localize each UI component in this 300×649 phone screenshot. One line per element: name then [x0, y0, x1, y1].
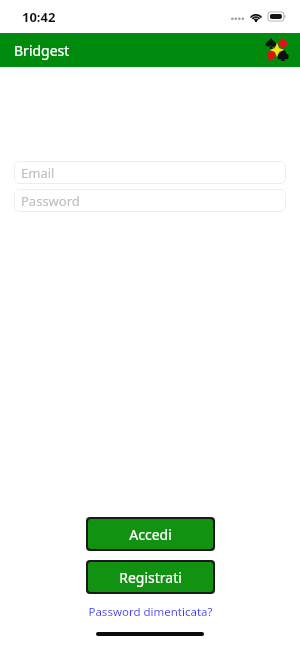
staticText: Password dimenticata? [88, 604, 213, 620]
button[interactable]: Registrati [88, 562, 213, 592]
button[interactable]: Bridgest logo [265, 38, 289, 62]
staticText: Registrati [119, 568, 182, 587]
button[interactable]: Email [14, 161, 286, 184]
button[interactable]: Password [14, 189, 286, 212]
staticText: Email [21, 164, 55, 182]
staticText: Password [21, 192, 80, 210]
staticText: Bridgest [14, 41, 70, 60]
staticText: Accedi [129, 525, 172, 544]
button[interactable]: Password dimenticata? [0, 604, 300, 620]
button[interactable]: Accedi [88, 519, 213, 549]
staticText: 10:42 [22, 8, 56, 26]
